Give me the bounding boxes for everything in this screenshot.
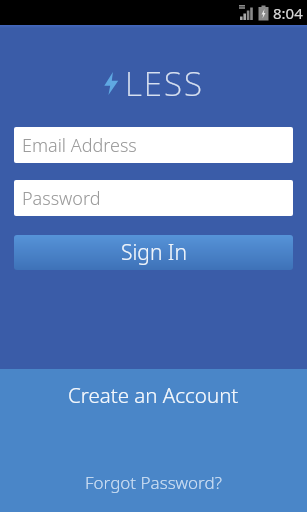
staticText: Password: [22, 186, 101, 211]
button[interactable]: Sign In: [14, 235, 293, 270]
staticText: Sign In: [121, 238, 187, 267]
button[interactable]: Email Address: [14, 127, 293, 163]
staticText: 8:04: [273, 3, 303, 23]
staticText: LESS: [125, 61, 204, 106]
button[interactable]: Create an Account: [68, 381, 239, 409]
button[interactable]: Password: [14, 180, 293, 216]
button[interactable]: Forgot Password?: [85, 471, 222, 494]
staticText: Email Address: [22, 133, 137, 158]
staticText: Create an Account: [68, 381, 239, 409]
staticText: Forgot Password?: [85, 471, 222, 494]
